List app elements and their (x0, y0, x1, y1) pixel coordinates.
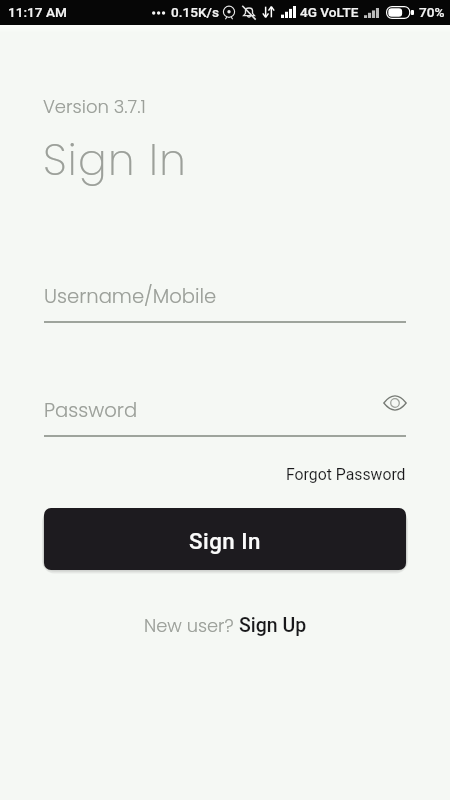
staticText: Password (44, 396, 138, 423)
staticText: 0.15K/s (171, 4, 219, 20)
staticText: Sign In (189, 528, 261, 554)
staticText: 70% (419, 4, 445, 20)
staticText: Username/Mobile (44, 282, 217, 309)
staticText: 11:17 AM (8, 4, 67, 20)
button[interactable]: Show password (380, 388, 410, 418)
staticText: Sign In (43, 130, 188, 189)
staticText: 4G VoLTE (300, 4, 359, 20)
staticText: New user? (144, 613, 239, 638)
button[interactable]: Forgot Password (44, 462, 406, 486)
button[interactable]: Sign Up (239, 614, 307, 637)
staticText: Version 3.7.1 (43, 94, 146, 119)
button[interactable]: Sign In (44, 508, 406, 570)
staticText: Forgot Password (286, 465, 406, 484)
